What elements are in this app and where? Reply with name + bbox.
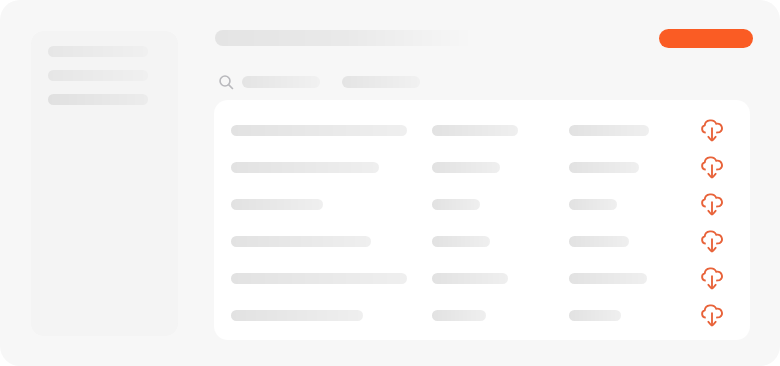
button[interactable] [342,76,420,88]
button[interactable]: Primary action [659,29,753,48]
button[interactable]: Download [699,265,725,291]
button[interactable] [214,193,750,215]
button[interactable] [214,156,750,178]
button[interactable] [214,267,750,289]
button[interactable]: Download [699,228,725,254]
button[interactable]: Search [216,72,236,92]
button[interactable] [214,119,750,141]
button[interactable] [214,304,750,326]
button[interactable]: Download [699,191,725,217]
button[interactable]: Download [699,302,725,328]
button[interactable]: Download [699,154,725,180]
button[interactable] [242,76,320,88]
button[interactable]: Download [699,117,725,143]
button[interactable] [214,230,750,252]
